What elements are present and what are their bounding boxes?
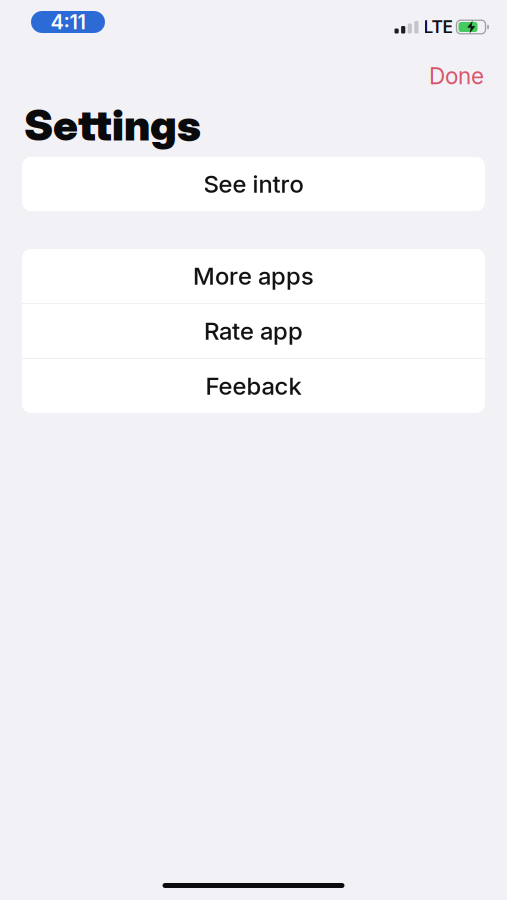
button[interactable]: Feeback [22, 359, 485, 413]
button[interactable]: Done [419, 54, 494, 98]
button[interactable]: Return to active session, 4:11 [31, 11, 105, 33]
staticText: Settings [24, 99, 201, 151]
button[interactable]: Rate app [22, 304, 485, 358]
staticText: LTE [423, 16, 452, 37]
staticText: See intro [203, 169, 303, 198]
staticText: Rate app [204, 316, 303, 345]
button[interactable]: More apps [22, 249, 485, 303]
staticText: More apps [193, 261, 314, 290]
staticText: 4:11 [50, 10, 85, 34]
staticText: Feeback [205, 371, 301, 400]
staticText: Done [429, 62, 484, 90]
button[interactable]: See intro [22, 157, 485, 211]
